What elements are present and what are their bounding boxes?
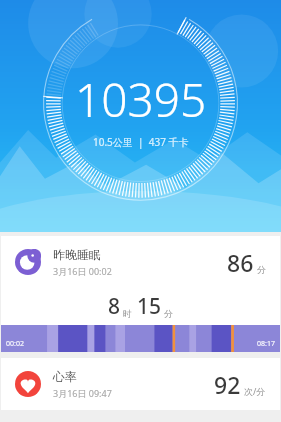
staticText: 时	[123, 308, 132, 319]
staticText: 3月16日 00:02	[53, 265, 112, 277]
staticText: 86	[227, 247, 254, 278]
staticText: 分	[257, 264, 266, 275]
staticText: 10.5公里 | 437 千卡	[93, 135, 189, 149]
staticText: 08:17	[257, 339, 275, 349]
button[interactable]: 00:02	[1, 325, 280, 352]
button[interactable]: Sleep	[1, 236, 280, 325]
staticText: 次/分	[244, 385, 266, 397]
staticText: 8	[108, 292, 121, 321]
other: Heart rate	[15, 371, 41, 397]
button[interactable]: 10395	[0, 0, 281, 232]
staticText: 昨晚睡眠	[53, 247, 101, 262]
button[interactable]: Heart rate	[1, 358, 280, 410]
staticText: 3月16日 09:47	[53, 387, 112, 399]
staticText: 92	[214, 369, 241, 400]
staticText: 10395	[75, 68, 207, 131]
other: Sleep	[15, 249, 41, 275]
staticText: 00:02	[6, 339, 24, 349]
staticText: 15	[137, 292, 162, 321]
staticText: 分	[164, 308, 173, 319]
staticText: 心率	[53, 369, 77, 384]
